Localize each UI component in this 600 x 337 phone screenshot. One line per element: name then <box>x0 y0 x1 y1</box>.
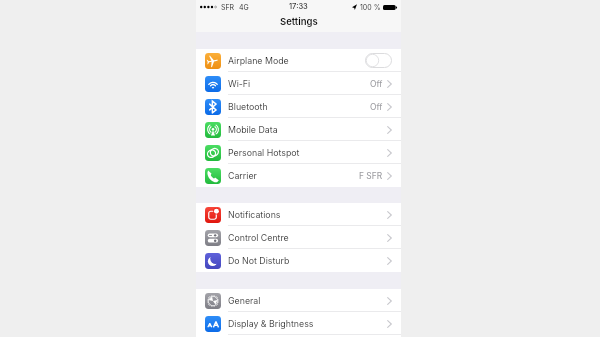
staticText: Personal Hotspot <box>228 147 300 158</box>
staticText: Carrier <box>228 170 257 181</box>
button[interactable]: Bluetooth <box>196 95 401 118</box>
staticText: Display & Brightness <box>228 318 314 329</box>
staticText: Control Centre <box>228 232 289 243</box>
staticText: 17:33 <box>289 2 308 11</box>
staticText: SFR <box>221 3 235 11</box>
staticText: Airplane Mode <box>228 55 289 66</box>
button[interactable]: Display & Brightness <box>196 312 401 335</box>
button[interactable]: Notifications <box>196 203 401 226</box>
staticText: 100 % <box>360 3 381 11</box>
button[interactable]: Control Centre <box>196 226 401 249</box>
button[interactable]: Wi-Fi <box>196 72 401 95</box>
staticText: Bluetooth <box>228 101 268 112</box>
staticText: General <box>228 295 261 306</box>
staticText: Notifications <box>228 209 281 220</box>
staticText: Off <box>370 79 383 89</box>
button[interactable]: Carrier <box>196 164 401 187</box>
staticText: Settings <box>280 16 318 27</box>
staticText: Mobile Data <box>228 124 278 135</box>
button[interactable]: Airplane Mode <box>196 49 401 72</box>
staticText: F SFR <box>359 171 383 181</box>
button[interactable]: Do Not Disturb <box>196 249 401 272</box>
staticText: Do Not Disturb <box>228 255 290 266</box>
button[interactable]: General <box>196 289 401 312</box>
button[interactable]: Mobile Data <box>196 118 401 141</box>
staticText: 4G <box>239 3 249 11</box>
staticText: Wi-Fi <box>228 78 251 89</box>
button[interactable]: Airplane Mode toggle <box>365 53 392 68</box>
staticText: Off <box>370 102 383 112</box>
button[interactable]: Personal Hotspot <box>196 141 401 164</box>
